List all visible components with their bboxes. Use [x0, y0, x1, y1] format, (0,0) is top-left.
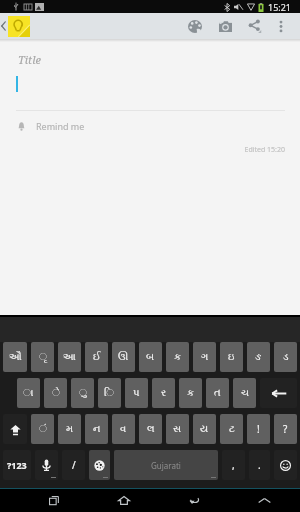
button[interactable]: ઔ [3, 342, 27, 372]
button[interactable]: emoji [274, 450, 297, 480]
button[interactable]: ?123 [3, 450, 31, 480]
staticText: ય [200, 424, 209, 434]
button[interactable]: backspace [260, 378, 297, 408]
button[interactable]: ક [179, 378, 202, 408]
button[interactable]: ઙ [247, 342, 270, 372]
button[interactable]: . [249, 450, 270, 480]
staticText: ુ [79, 388, 87, 398]
staticText: 15:21 [268, 1, 292, 13]
staticText: આ [63, 352, 76, 362]
button[interactable]: More options [269, 13, 293, 39]
staticText: ર [161, 388, 167, 398]
button[interactable]: ુ [71, 378, 94, 408]
staticText: ઔ [9, 352, 22, 362]
staticText: ? [283, 422, 288, 436]
staticText: ઈ [93, 352, 101, 362]
button[interactable]: ડ [274, 342, 297, 372]
button[interactable]: વ [112, 414, 135, 444]
button[interactable]: Hide keyboard [246, 489, 282, 512]
staticText: ે [52, 388, 60, 398]
staticText: Title [18, 52, 41, 67]
staticText: ન [93, 424, 101, 434]
button[interactable]: ક [166, 342, 189, 372]
button[interactable]: પ [125, 378, 148, 408]
button[interactable]: મ [58, 414, 81, 444]
staticText: ?123 [7, 459, 27, 471]
staticText: ! [257, 422, 260, 436]
button[interactable]: સ [166, 414, 189, 444]
button[interactable]: Gujarati [114, 450, 218, 480]
staticText: મ [66, 424, 74, 434]
button[interactable]: ? [274, 414, 297, 444]
staticText: . [258, 458, 261, 472]
button[interactable]: ન [85, 414, 108, 444]
button[interactable]: ઈ [85, 342, 108, 372]
button[interactable]: ે [44, 378, 67, 408]
button[interactable]: , [222, 450, 245, 480]
staticText: ઊ [118, 352, 129, 362]
staticText: ઇ [228, 352, 235, 362]
button[interactable]: ૃ [31, 342, 54, 372]
button[interactable]: ટ [220, 414, 243, 444]
staticText: ા [23, 388, 34, 398]
staticText: ચ [241, 388, 249, 398]
staticText: સ [173, 424, 182, 434]
button[interactable]: ત [206, 378, 229, 408]
staticText: ૃ [39, 352, 47, 362]
button[interactable]: Remind me [0, 118, 300, 134]
button[interactable]: લ [139, 414, 162, 444]
staticText: ગ [201, 352, 209, 362]
button[interactable]: mic [35, 450, 58, 480]
staticText: / [72, 458, 76, 472]
staticText: Edited 15:20 [0, 145, 285, 155]
button[interactable]: ર [152, 378, 175, 408]
button[interactable]: Change colour [180, 13, 210, 39]
staticText: ડ [283, 352, 289, 362]
staticText: પ [133, 388, 140, 398]
staticText: ત [214, 388, 221, 398]
staticText: ક [187, 388, 195, 398]
staticText: લ [147, 424, 155, 434]
button[interactable]: Share [240, 13, 269, 39]
button[interactable]: આ [58, 342, 81, 372]
staticText: ં [39, 424, 47, 434]
staticText: , [232, 458, 235, 472]
staticText: ટ [229, 424, 235, 434]
button[interactable]: ય [193, 414, 216, 444]
button[interactable]: Navigate up [0, 13, 30, 39]
staticText: ક [174, 352, 182, 362]
staticText: બ [146, 352, 155, 362]
button[interactable]: shift [3, 414, 27, 444]
staticText: ઙ [255, 352, 262, 362]
staticText: િ [104, 388, 115, 398]
button[interactable]: િ [98, 378, 121, 408]
staticText: Remind me [36, 120, 85, 132]
button[interactable]: globe [89, 450, 110, 480]
button[interactable]: બ [139, 342, 162, 372]
button[interactable]: ! [247, 414, 270, 444]
button[interactable]: ઇ [220, 342, 243, 372]
button[interactable]: Add image [210, 13, 240, 39]
button[interactable]: ઊ [112, 342, 135, 372]
staticText: Gujarati [151, 460, 181, 471]
button[interactable]: ા [17, 378, 40, 408]
staticText: વ [120, 424, 127, 434]
button[interactable]: ચ [233, 378, 256, 408]
button[interactable]: / [62, 450, 85, 480]
button[interactable]: ગ [193, 342, 216, 372]
button[interactable]: Back [176, 489, 212, 512]
button[interactable]: Home [106, 489, 142, 512]
button[interactable]: Recents [36, 489, 72, 512]
button[interactable]: ં [31, 414, 54, 444]
